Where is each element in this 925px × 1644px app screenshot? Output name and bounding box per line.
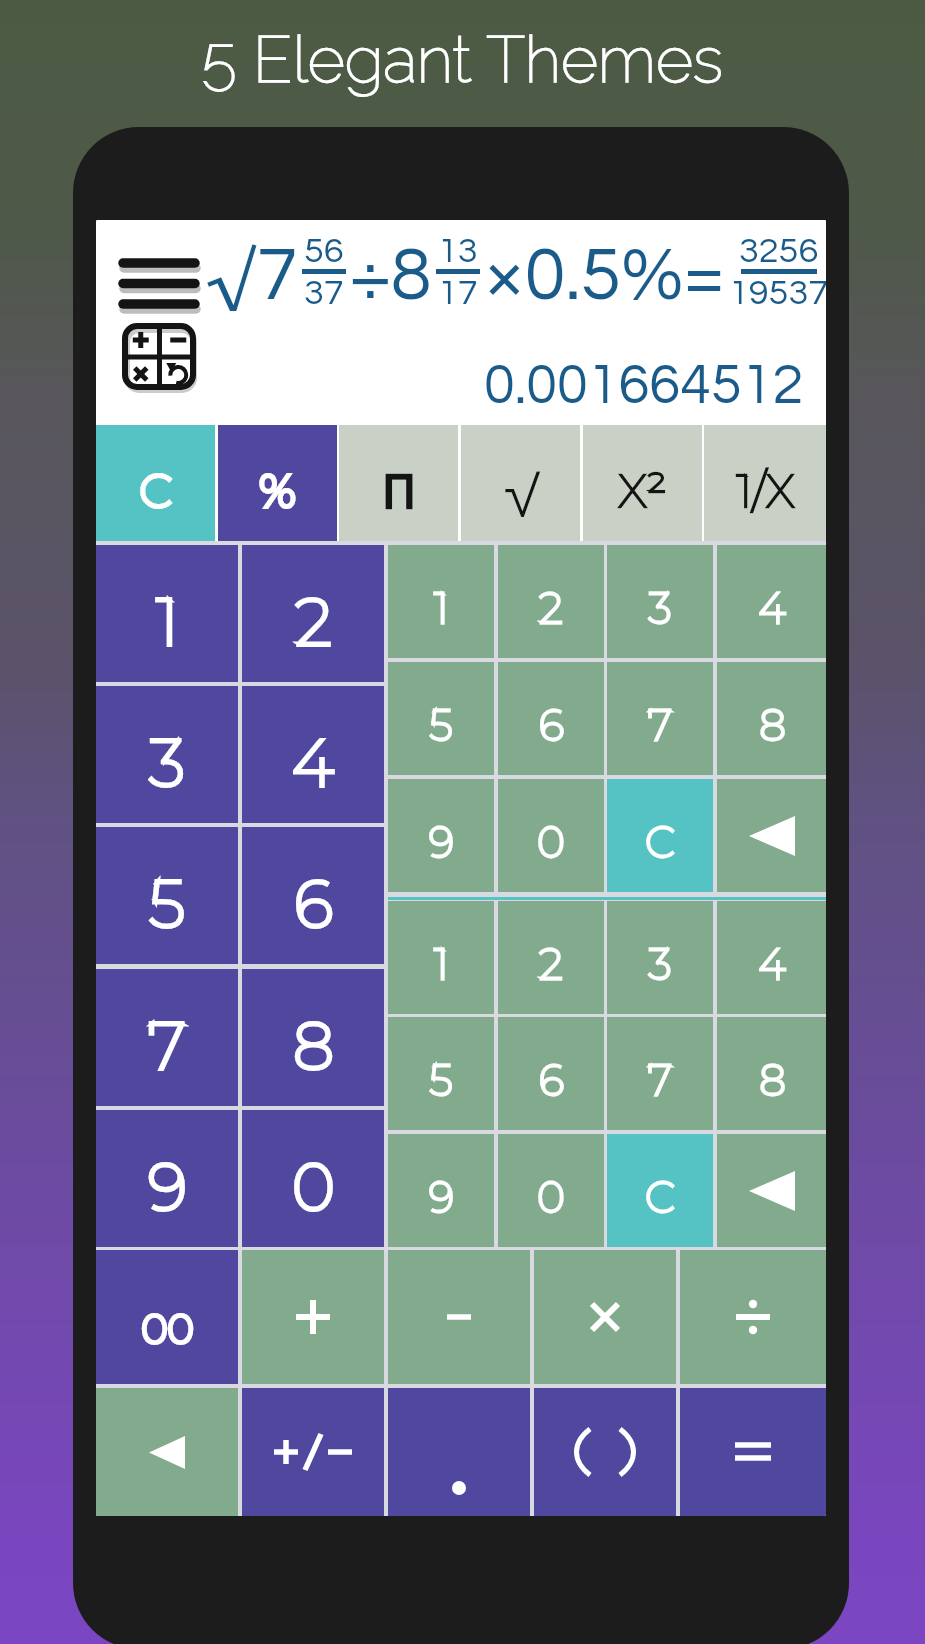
button[interactable]: 1 <box>388 545 494 658</box>
staticText: √7 <box>207 238 298 314</box>
staticText: 1 <box>434 582 449 633</box>
button[interactable]: 1 <box>388 901 494 1014</box>
staticText: C <box>139 462 172 518</box>
staticText: ÷8 <box>350 238 432 314</box>
button[interactable]: C <box>607 1134 713 1247</box>
staticText: 4 <box>758 582 786 633</box>
staticText: 00 <box>141 1304 194 1353</box>
staticText: 7 <box>648 699 672 750</box>
staticText: C <box>645 816 675 867</box>
staticText: 6 <box>294 864 333 943</box>
staticText: X² <box>618 462 667 518</box>
staticText: 7 <box>148 1006 186 1085</box>
button[interactable]: 4 <box>717 545 826 658</box>
staticText: 0.001664512 <box>484 357 804 415</box>
staticText: 0 <box>537 1171 565 1222</box>
button[interactable]: C <box>96 425 215 541</box>
button[interactable]: Backspace <box>717 779 826 892</box>
button[interactable]: 6 <box>498 1017 604 1130</box>
staticText: 8 <box>759 699 786 750</box>
staticText: 9 <box>429 816 454 867</box>
staticText: 9 <box>148 1147 187 1226</box>
button[interactable]: 3 <box>607 545 713 658</box>
button[interactable]: 0 <box>242 1110 384 1247</box>
button[interactable]: C <box>607 779 713 892</box>
button[interactable]: 7 <box>607 662 713 775</box>
staticText: 37 <box>304 274 344 311</box>
staticText: 9 <box>429 1171 454 1222</box>
staticText: 7 <box>648 699 672 750</box>
staticText: 5 Elegant Themes <box>202 22 723 97</box>
staticText: % <box>259 462 296 518</box>
button[interactable]: Backspace <box>717 1134 826 1247</box>
staticText: 5 <box>149 864 185 943</box>
staticText: 1/X <box>736 462 795 518</box>
button[interactable]: 6 <box>242 827 384 964</box>
button[interactable]: 4 <box>242 686 384 823</box>
button[interactable]: Equals <box>680 1388 826 1516</box>
button[interactable]: 00 <box>96 1250 238 1384</box>
button[interactable]: 3 <box>607 901 713 1014</box>
button[interactable]: 7 <box>607 1017 713 1130</box>
button[interactable]: 8 <box>717 662 826 775</box>
button[interactable]: Calculator <box>122 323 197 391</box>
button[interactable] <box>242 1250 384 1384</box>
button[interactable]: 3 <box>96 686 238 823</box>
button[interactable]: 5 <box>96 827 238 964</box>
button[interactable]: 0 <box>498 779 604 892</box>
staticText: 56 <box>304 232 344 269</box>
staticText: 3 <box>648 938 672 989</box>
staticText: 3 <box>149 723 185 802</box>
button[interactable]: Plus minus <box>242 1388 384 1516</box>
staticText: 8 <box>293 1006 334 1085</box>
button[interactable]: 5 <box>388 662 494 775</box>
staticText: 5 <box>429 699 453 750</box>
button[interactable]: √ <box>461 425 580 541</box>
button[interactable]: 5 <box>388 1017 494 1130</box>
staticText: C <box>645 816 675 867</box>
staticText: 4 <box>758 582 786 633</box>
button[interactable]: Backspace <box>96 1388 238 1516</box>
button[interactable] <box>388 1250 530 1384</box>
button[interactable]: 4 <box>717 901 826 1014</box>
button[interactable]: 7 <box>96 969 238 1106</box>
staticText: 0 <box>537 1171 565 1222</box>
button[interactable]: 2 <box>498 901 604 1014</box>
button[interactable]: 9 <box>388 1134 494 1247</box>
button[interactable] <box>534 1250 676 1384</box>
staticText: % <box>259 462 296 518</box>
button[interactable]: 2 <box>498 545 604 658</box>
staticText: 1 <box>434 582 449 633</box>
staticText: 1/X <box>736 462 795 518</box>
staticText: √ <box>503 462 539 518</box>
staticText: 8 <box>759 699 786 750</box>
button[interactable] <box>680 1250 826 1384</box>
staticText: C <box>645 1171 675 1222</box>
staticText: Π <box>382 459 416 522</box>
button[interactable]: 8 <box>242 969 384 1106</box>
staticText: 5 Elegant Themes <box>202 22 723 97</box>
button[interactable]: 8 <box>717 1017 826 1130</box>
staticText: 17 <box>438 274 478 311</box>
button[interactable]: Parentheses <box>534 1388 676 1516</box>
button[interactable]: 1 <box>96 545 238 682</box>
button[interactable]: Π <box>339 425 458 541</box>
button[interactable]: Menu <box>119 254 199 310</box>
staticText: 2 <box>295 582 332 661</box>
staticText: 6 <box>539 699 564 750</box>
staticText: 4 <box>292 723 334 802</box>
button[interactable]: Decimal point <box>388 1388 530 1516</box>
button[interactable]: % <box>218 425 337 541</box>
button[interactable]: 0 <box>498 1134 604 1247</box>
button[interactable]: 6 <box>498 662 604 775</box>
button[interactable]: X² <box>583 425 702 541</box>
button[interactable]: 1/X <box>704 425 826 541</box>
button[interactable]: 9 <box>96 1110 238 1247</box>
staticText: 5 <box>429 699 453 750</box>
staticText: 6 <box>539 1054 564 1105</box>
button[interactable]: 2 <box>242 545 384 682</box>
staticText: 2 <box>539 938 563 989</box>
staticText: 4 <box>758 938 786 989</box>
button[interactable]: 9 <box>388 779 494 892</box>
staticText: 3 <box>648 938 672 989</box>
